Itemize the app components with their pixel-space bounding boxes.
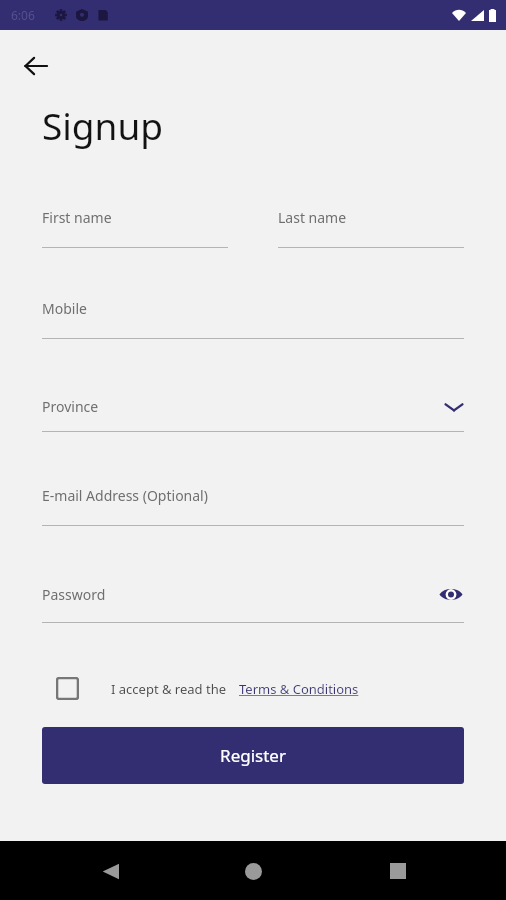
- staticText: Signup: [42, 100, 164, 150]
- button[interactable]: Back: [14, 44, 58, 88]
- button[interactable]: Accept terms checkbox: [56, 677, 79, 700]
- staticText: I accept & read the: [111, 680, 227, 698]
- staticText: Last name: [278, 208, 347, 227]
- staticText: E-mail Address (Optional): [42, 486, 208, 505]
- button[interactable]: E-mail Address (Optional): [42, 486, 464, 526]
- button[interactable]: Recent apps: [376, 849, 420, 893]
- button[interactable]: Show password: [438, 581, 464, 607]
- button[interactable]: Mobile: [42, 299, 464, 339]
- button[interactable]: Back: [88, 849, 132, 893]
- button[interactable]: Terms & Conditions: [239, 680, 359, 698]
- button[interactable]: First name: [42, 208, 228, 248]
- button[interactable]: Home: [231, 849, 275, 893]
- button[interactable]: Last name: [278, 208, 464, 248]
- button[interactable]: Password: [42, 581, 464, 623]
- button[interactable]: Province: [42, 397, 464, 432]
- staticText: Register: [220, 744, 286, 767]
- staticText: Mobile: [42, 299, 87, 318]
- button[interactable]: Register: [42, 727, 464, 784]
- staticText: First name: [42, 208, 112, 227]
- staticText: Password: [42, 585, 106, 604]
- button[interactable]: Accept terms checkbox: [42, 677, 464, 700]
- staticText: Province: [42, 397, 99, 416]
- staticText: 6:06: [11, 7, 35, 23]
